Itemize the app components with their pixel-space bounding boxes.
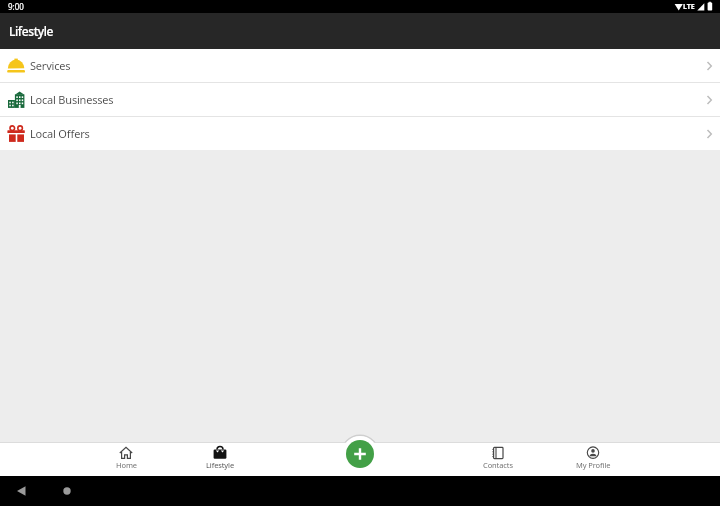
staticText: Local Offers [30,126,90,141]
button[interactable] [11,481,31,501]
button[interactable]: My Profile [561,446,625,470]
button[interactable]: Lifestyle [188,446,252,470]
staticText: Services [30,58,71,73]
button[interactable] [346,440,374,468]
button[interactable]: Local Offers [0,117,720,150]
staticText: Home [116,460,137,470]
staticText: Lifestyle [9,23,54,39]
button[interactable] [57,481,77,501]
button[interactable]: Home [94,446,158,470]
button[interactable]: Contacts [466,446,530,470]
staticText: 9:00 [8,1,24,12]
staticText: Contacts [483,460,513,470]
staticText: Lifestyle [206,460,235,470]
button[interactable]: Services [0,49,720,82]
button[interactable]: Local Businesses [0,83,720,116]
staticText: LTE [683,2,695,12]
staticText: My Profile [576,460,611,470]
staticText: Local Businesses [30,92,114,107]
